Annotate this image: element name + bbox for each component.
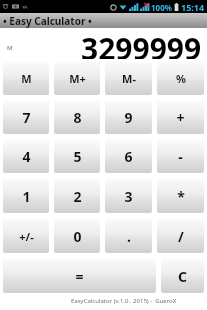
staticText: +: [176, 108, 185, 127]
button[interactable]: 8: [54, 101, 100, 134]
staticText: 4: [22, 147, 31, 166]
staticText: +/-: [19, 229, 34, 244]
staticText: M: [7, 44, 13, 52]
staticText: 7: [22, 108, 31, 127]
staticText: /: [178, 227, 184, 246]
button[interactable]: 2: [54, 179, 100, 213]
staticText: EasyCalculator (v.1.0 . 2015) - GueroX: [71, 297, 177, 305]
button[interactable]: =: [3, 259, 156, 293]
staticText: %: [176, 71, 186, 86]
button[interactable]: 3: [105, 179, 152, 213]
staticText: C: [178, 267, 187, 286]
button[interactable]: 9: [105, 101, 152, 134]
staticText: • Easy Calculator •: [3, 14, 92, 28]
button[interactable]: 4: [3, 140, 49, 173]
button[interactable]: 1: [3, 179, 49, 213]
staticText: 1: [22, 187, 31, 206]
button[interactable]: 5: [54, 140, 100, 173]
button[interactable]: -: [157, 140, 204, 173]
staticText: 8: [73, 108, 82, 127]
staticText: 3: [124, 187, 133, 206]
button[interactable]: 0: [54, 219, 100, 253]
staticText: 2: [73, 187, 82, 206]
button[interactable]: M+: [54, 62, 100, 95]
staticText: 100%: [151, 2, 172, 13]
staticText: 6: [124, 147, 133, 166]
button[interactable]: M: [3, 62, 49, 95]
button[interactable]: • Easy Calculator •: [0, 13, 207, 28]
staticText: 0: [73, 227, 82, 246]
button[interactable]: 7: [3, 101, 49, 134]
staticText: 9: [124, 108, 133, 127]
staticText: 3299999: [81, 28, 202, 59]
button[interactable]: %: [157, 62, 204, 95]
button[interactable]: .: [105, 219, 152, 253]
staticText: =: [75, 267, 84, 286]
button[interactable]: M-: [105, 62, 152, 95]
staticText: *: [177, 187, 185, 206]
staticText: M: [21, 71, 32, 86]
button[interactable]: /: [157, 219, 204, 253]
button[interactable]: *: [157, 179, 204, 213]
staticText: .: [127, 227, 131, 246]
staticText: M-: [122, 71, 136, 86]
staticText: 5: [73, 147, 82, 166]
button[interactable]: +/-: [3, 219, 49, 253]
staticText: 15:14: [181, 1, 205, 13]
button[interactable]: 6: [105, 140, 152, 173]
staticText: -: [178, 147, 183, 166]
button[interactable]: C: [161, 259, 204, 293]
button[interactable]: +: [157, 101, 204, 134]
staticText: M+: [69, 71, 86, 86]
